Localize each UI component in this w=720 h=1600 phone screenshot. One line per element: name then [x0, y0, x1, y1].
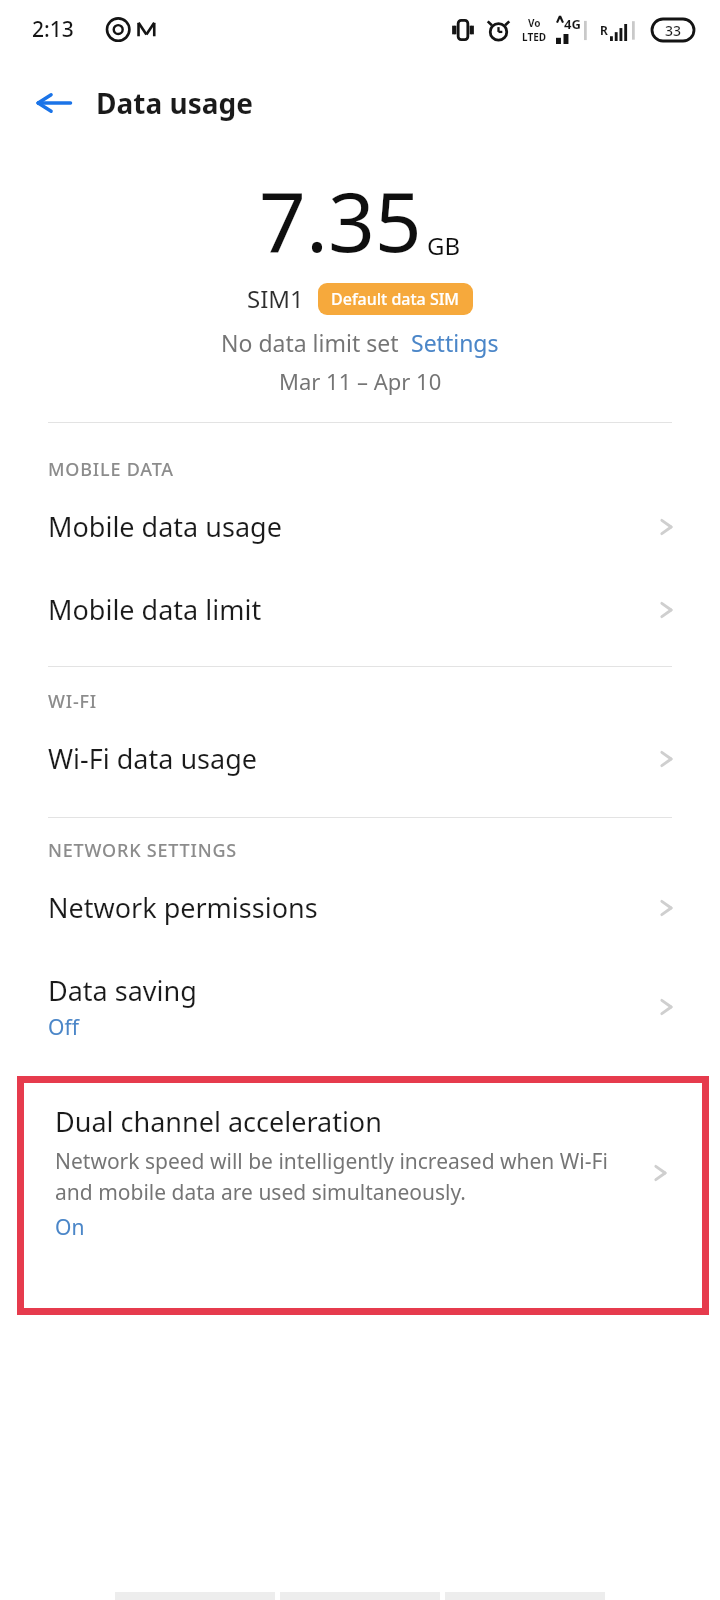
staticText: 33	[665, 21, 682, 40]
staticText: On	[55, 1213, 85, 1242]
staticText: Mar 11 – Apr 10	[279, 366, 442, 396]
button[interactable]: Wi-Fi data usage	[0, 714, 720, 797]
staticText: 2:13	[32, 15, 74, 44]
staticText: 7.35	[259, 164, 422, 276]
button[interactable]: Mobile data limit	[0, 565, 720, 648]
staticText: Dual channel acceleration	[55, 1103, 382, 1140]
staticText: WI-FI	[48, 689, 97, 714]
staticText: NETWORK SETTINGS	[48, 838, 238, 863]
staticText: Wi-Fi data usage	[48, 740, 258, 777]
staticText: 4G	[564, 15, 581, 33]
staticText: Network permissions	[48, 889, 318, 926]
button[interactable]: Settings	[411, 327, 499, 358]
staticText: Mobile data limit	[48, 591, 262, 628]
staticText: Network speed will be intelligently incr…	[55, 1147, 638, 1206]
staticText: Data usage	[96, 84, 253, 122]
staticText: Mobile data usage	[48, 508, 282, 545]
button[interactable]: Network permissions	[0, 863, 720, 946]
button[interactable]: Default data SIM	[318, 283, 473, 315]
button[interactable]: Dual channel acceleration	[24, 1083, 702, 1308]
staticText: SIM1	[247, 282, 304, 315]
staticText: Vo	[528, 16, 541, 30]
staticText: Off	[48, 1013, 79, 1042]
button[interactable]: Back	[24, 73, 84, 133]
staticText: Data saving	[48, 972, 197, 1009]
staticText: No data limit set	[221, 327, 399, 358]
button[interactable]: Data saving	[0, 946, 720, 1062]
staticText: Settings	[411, 327, 499, 358]
staticText: MOBILE DATA	[48, 457, 174, 482]
staticText: LTED	[522, 30, 547, 44]
button[interactable]: Mobile data usage	[0, 482, 720, 565]
staticText: GB	[427, 229, 461, 262]
staticText: R	[600, 22, 608, 38]
staticText: Default data SIM	[331, 288, 460, 310]
